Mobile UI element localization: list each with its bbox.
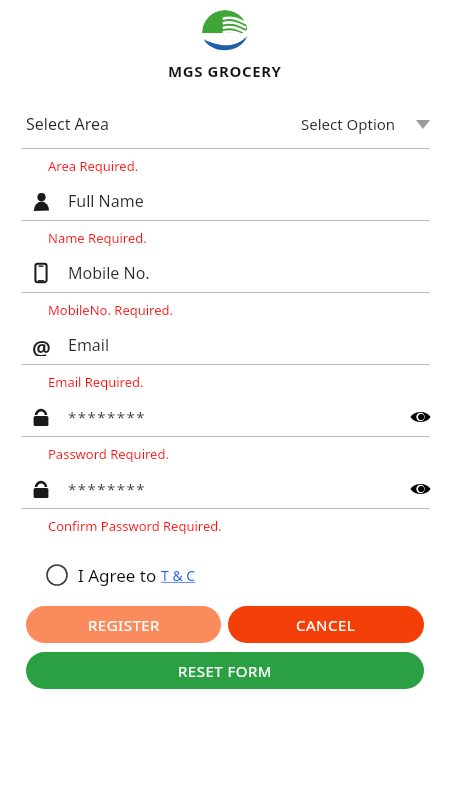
button[interactable]: Show password bbox=[403, 472, 437, 506]
staticText: MGS GROCERY bbox=[168, 61, 282, 81]
staticText: Name Required. bbox=[48, 229, 147, 247]
staticText: T & C bbox=[161, 566, 196, 585]
button[interactable]: Show password bbox=[403, 400, 437, 434]
staticText: I Agree to bbox=[78, 564, 161, 587]
staticText: Password Required. bbox=[48, 445, 169, 463]
button[interactable]: RESET FORM bbox=[26, 652, 424, 689]
button[interactable]: @ bbox=[0, 326, 450, 364]
staticText: Select Option bbox=[301, 114, 396, 134]
staticText: Email Required. bbox=[48, 373, 144, 391]
button[interactable]: REGISTER bbox=[26, 606, 221, 643]
staticText: Area Required. bbox=[48, 157, 139, 175]
button[interactable]: ******** bbox=[0, 398, 450, 436]
staticText: Mobile No. bbox=[68, 262, 150, 284]
staticText: Select Area bbox=[26, 113, 110, 135]
staticText: MobileNo. Required. bbox=[48, 301, 174, 319]
button[interactable]: Select Area bbox=[0, 100, 450, 148]
staticText: REGISTER bbox=[88, 615, 160, 635]
staticText: CANCEL bbox=[296, 615, 356, 635]
button[interactable]: Full Name bbox=[0, 182, 450, 220]
staticText: ******** bbox=[68, 407, 147, 427]
button[interactable]: ******** bbox=[0, 470, 450, 508]
button[interactable]: CANCEL bbox=[228, 606, 424, 643]
staticText: @ bbox=[32, 334, 51, 356]
staticText: Confirm Password Required. bbox=[48, 517, 222, 535]
button[interactable]: I Agree to bbox=[0, 558, 450, 592]
staticText: RESET FORM bbox=[178, 661, 272, 681]
staticText: Email bbox=[68, 334, 110, 356]
staticText: Full Name bbox=[68, 190, 144, 212]
staticText: ******** bbox=[68, 479, 147, 499]
button[interactable]: Mobile No. bbox=[0, 254, 450, 292]
